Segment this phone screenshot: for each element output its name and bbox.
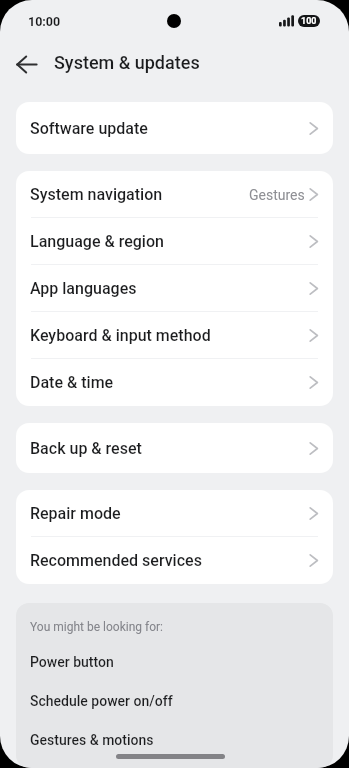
staticText: Date & time bbox=[30, 373, 114, 392]
staticText: System navigation bbox=[30, 185, 163, 204]
staticText: Back up & reset bbox=[30, 439, 142, 458]
staticText: Language & region bbox=[30, 232, 164, 251]
staticText: Gestures bbox=[249, 187, 305, 203]
staticText: Software update bbox=[30, 119, 148, 138]
staticText: App languages bbox=[30, 279, 137, 298]
staticText: Repair mode bbox=[30, 504, 121, 523]
button[interactable] bbox=[0, 40, 54, 88]
staticText: Gestures & motions bbox=[30, 732, 154, 748]
button[interactable]: App languages bbox=[16, 265, 333, 312]
button[interactable]: Schedule power on/off bbox=[30, 681, 319, 720]
button[interactable]: Back up & reset bbox=[16, 423, 333, 473]
staticText: Recommended services bbox=[30, 551, 202, 570]
staticText: Power button bbox=[30, 654, 114, 670]
button[interactable]: Recommended services bbox=[16, 537, 333, 584]
staticText: 100 bbox=[301, 16, 317, 27]
staticText: System & updates bbox=[54, 52, 200, 73]
button[interactable]: Keyboard & input method bbox=[16, 312, 333, 359]
staticText: You might be looking for: bbox=[30, 620, 163, 634]
button[interactable]: Software update bbox=[16, 102, 333, 154]
button[interactable]: Language & region bbox=[16, 218, 333, 265]
button[interactable]: Power button bbox=[30, 642, 319, 681]
staticText: Schedule power on/off bbox=[30, 693, 173, 709]
button[interactable]: Gestures & motions bbox=[30, 720, 319, 759]
staticText: Keyboard & input method bbox=[30, 326, 211, 345]
button[interactable]: Repair mode bbox=[16, 490, 333, 537]
button[interactable]: Date & time bbox=[16, 359, 333, 406]
button[interactable]: System navigation bbox=[16, 171, 333, 218]
staticText: 10:00 bbox=[28, 14, 61, 29]
